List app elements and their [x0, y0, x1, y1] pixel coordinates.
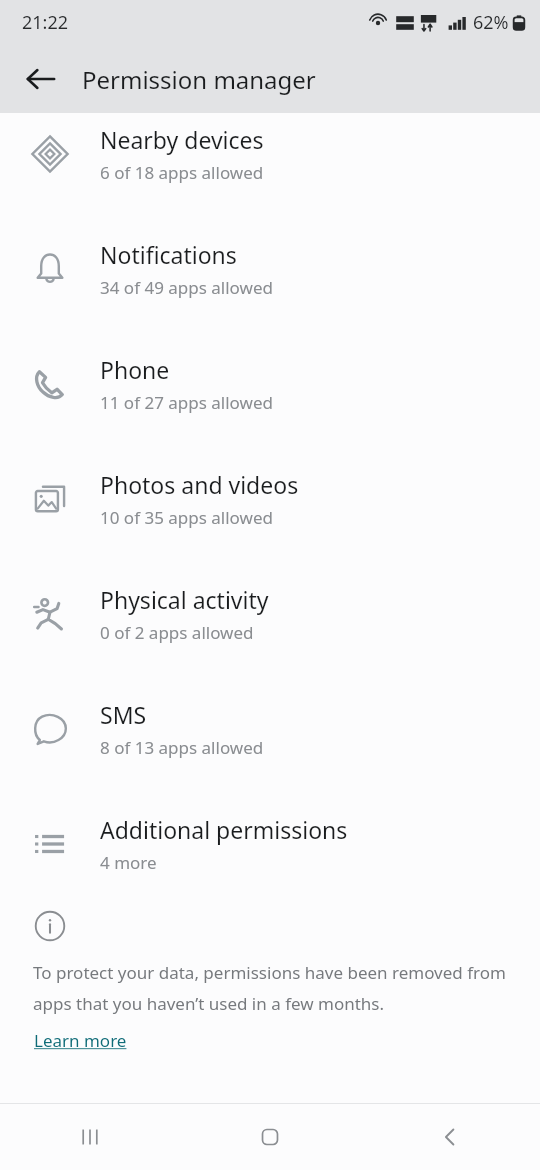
staticText: Nearby devices [100, 124, 264, 155]
staticText: 8 of 13 apps allowed [100, 736, 264, 759]
button[interactable]: Back [14, 52, 68, 106]
staticText: 21:22 [22, 10, 69, 35]
button[interactable]: Notifications [0, 211, 540, 326]
button[interactable]: Home [180, 1104, 360, 1170]
staticText: Notifications [100, 239, 237, 270]
button[interactable]: Phone [0, 326, 540, 441]
staticText: 6 of 18 apps allowed [100, 161, 264, 184]
staticText: Additional permissions [100, 814, 348, 845]
staticText: 34 of 49 apps allowed [100, 276, 273, 299]
button[interactable]: Physical activity [0, 556, 540, 671]
staticText: 62% [473, 10, 509, 35]
staticText: To protect your data, permissions have b… [33, 961, 518, 1015]
staticText: Physical activity [100, 584, 269, 615]
button[interactable]: Photos and videos [0, 441, 540, 556]
staticText: Learn more [34, 1029, 127, 1052]
staticText: 4 more [100, 851, 157, 874]
button[interactable]: Additional permissions [0, 786, 540, 901]
button[interactable]: SMS [0, 671, 540, 786]
button[interactable]: Nearby devices [0, 96, 540, 211]
button[interactable]: Learn more [33, 1027, 128, 1054]
staticText: Permission manager [82, 63, 316, 96]
staticText: 11 of 27 apps allowed [100, 391, 273, 414]
staticText: SMS [100, 699, 147, 730]
button[interactable]: Recents [0, 1104, 180, 1170]
staticText: Photos and videos [100, 469, 299, 500]
staticText: 0 of 2 apps allowed [100, 621, 254, 644]
staticText: Phone [100, 354, 170, 385]
staticText: 10 of 35 apps allowed [100, 506, 273, 529]
button[interactable]: Back [360, 1104, 540, 1170]
